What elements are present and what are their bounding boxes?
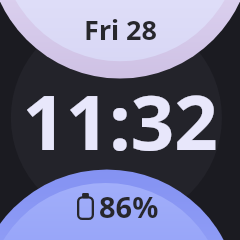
other: Battery level 86 percent (77, 193, 94, 220)
button[interactable]: Battery level 86 percent (0, 180, 240, 240)
staticText: Fri 28 (84, 11, 157, 48)
staticText: 86% (99, 187, 159, 226)
staticText: 11:32 (22, 69, 218, 173)
button[interactable]: Fri 28 (0, 0, 240, 58)
